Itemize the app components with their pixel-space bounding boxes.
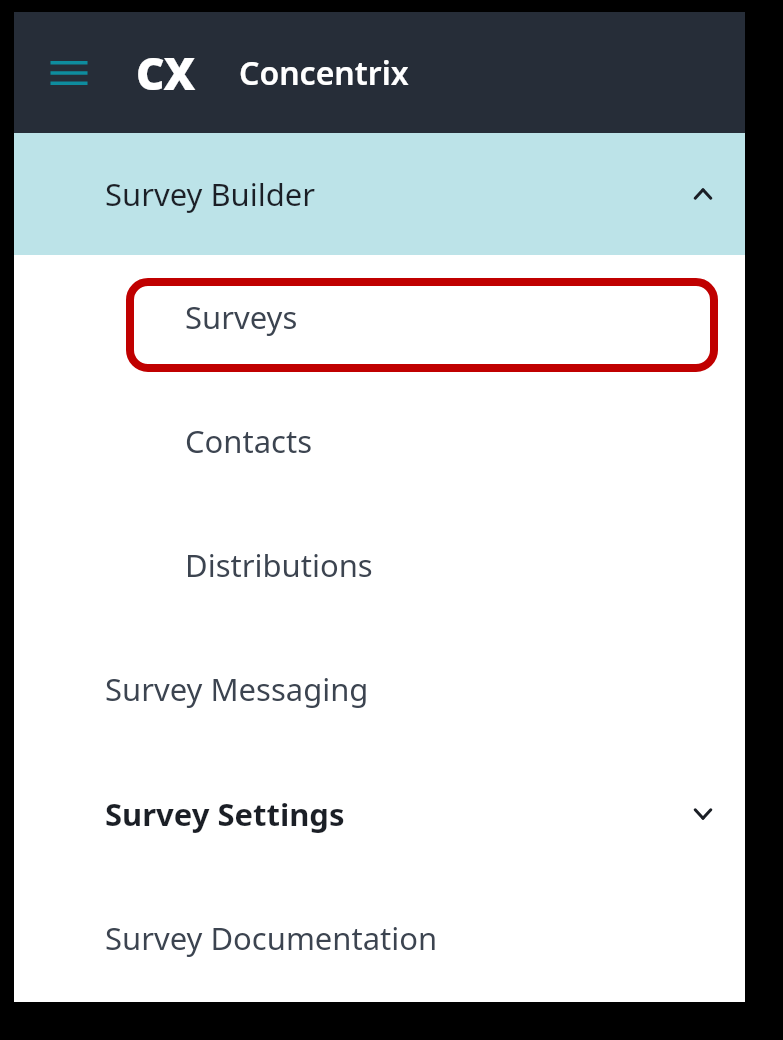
button[interactable]: Surveys: [14, 255, 745, 379]
button[interactable]: Survey Builder: [14, 133, 745, 255]
staticText: Contacts: [185, 420, 313, 462]
other: Collapse Survey Builder: [679, 170, 727, 218]
button[interactable]: Distributions: [14, 503, 745, 627]
staticText: Survey Messaging: [105, 668, 369, 710]
button[interactable]: Survey Settings: [14, 751, 745, 876]
staticText: Survey Builder: [105, 173, 316, 215]
button[interactable]: Open navigation menu: [45, 49, 93, 97]
staticText: Concentrix: [239, 51, 409, 95]
staticText: CX: [136, 43, 195, 103]
staticText: Surveys: [185, 296, 298, 338]
staticText: Distributions: [185, 544, 373, 586]
button[interactable]: Survey Documentation: [14, 876, 745, 1000]
other: Expand Survey Settings: [679, 790, 727, 838]
staticText: Survey Documentation: [105, 917, 438, 959]
button[interactable]: Contacts: [14, 379, 745, 503]
button[interactable]: Survey Messaging: [14, 627, 745, 751]
staticText: Survey Settings: [105, 793, 345, 835]
